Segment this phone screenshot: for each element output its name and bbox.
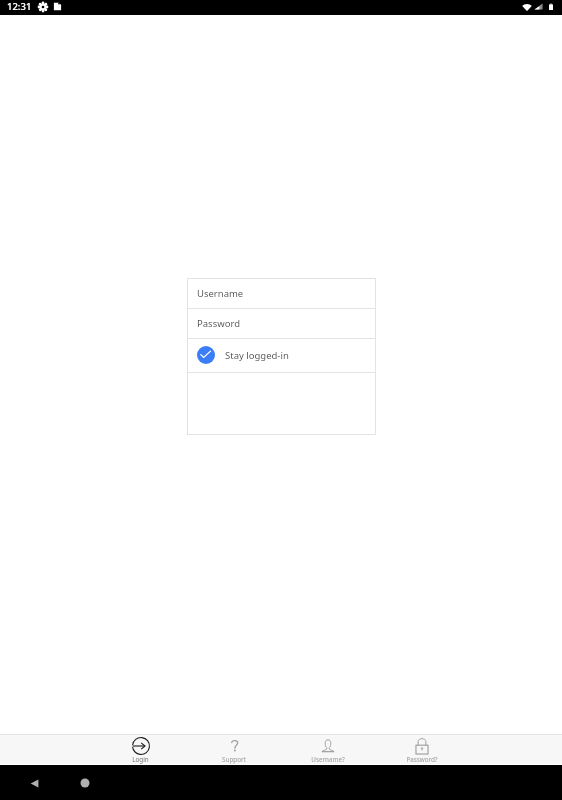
button[interactable]: Back — [24, 773, 44, 793]
staticText: Password? — [406, 755, 438, 764]
button[interactable]: Username? — [281, 735, 375, 764]
staticText: Support — [222, 755, 246, 764]
staticText: Stay logged-in — [225, 349, 289, 362]
button[interactable]: Password? — [375, 735, 469, 764]
staticText: Login — [132, 755, 149, 764]
staticText: 12:31 — [7, 0, 32, 13]
button[interactable]: Username — [187, 278, 376, 308]
button[interactable]: Login — [94, 735, 187, 764]
button[interactable]: Stay logged-in — [187, 338, 376, 372]
button[interactable]: Password — [187, 308, 376, 338]
staticText: Username — [197, 287, 244, 300]
staticText: Username? — [311, 755, 345, 764]
staticText: Password — [197, 317, 240, 330]
button[interactable]: Home — [75, 773, 95, 793]
button[interactable]: Support — [187, 735, 281, 764]
